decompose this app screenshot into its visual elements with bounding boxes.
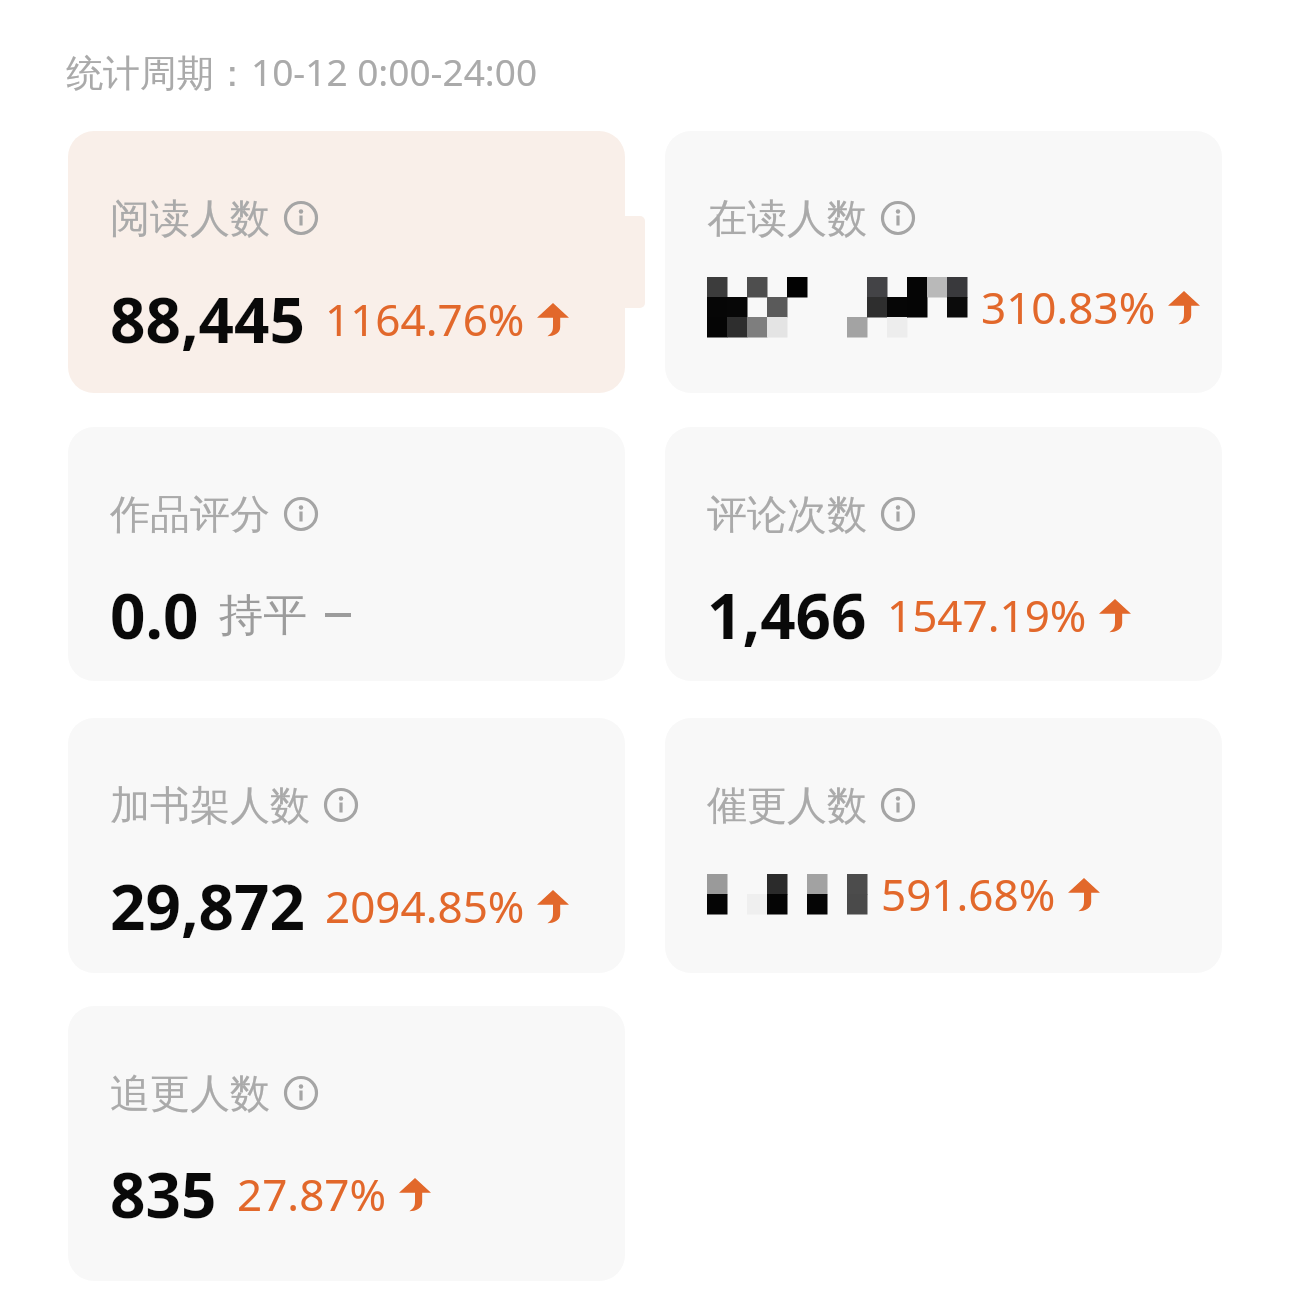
staticText: 评论次数 — [707, 489, 867, 539]
button[interactable]: 加书架人数 — [68, 718, 625, 973]
button[interactable]: 追更人数 — [68, 1006, 625, 1281]
staticText: 88,445 — [110, 277, 305, 361]
staticText: 作品评分 — [110, 489, 270, 539]
staticText: 阅读人数 — [110, 193, 270, 243]
staticText: 持平 — [219, 588, 307, 643]
button[interactable]: 作品评分 — [68, 427, 625, 681]
staticText: 27.87% — [237, 1164, 387, 1224]
staticText: 0.0 — [110, 573, 199, 657]
staticText: 310.83% — [981, 277, 1156, 337]
staticText: 1547.19% — [887, 585, 1087, 645]
staticText: 在读人数 — [707, 193, 867, 243]
staticText: 统计周期：10-12 0:00-24:00 — [66, 46, 538, 97]
staticText: 加书架人数 — [110, 780, 310, 830]
staticText: 29,872 — [110, 864, 305, 948]
staticText: 1,466 — [707, 573, 867, 657]
button[interactable]: 阅读人数 — [68, 131, 625, 393]
staticText: 835 — [110, 1152, 217, 1236]
button[interactable]: 在读人数 — [665, 131, 1222, 393]
staticText: 追更人数 — [110, 1068, 270, 1118]
staticText: 591.68% — [881, 864, 1056, 924]
staticText: 2094.85% — [325, 876, 525, 936]
staticText: 催更人数 — [707, 780, 867, 830]
button[interactable]: 评论次数 — [665, 427, 1222, 681]
staticText: 1164.76% — [325, 289, 525, 349]
button[interactable]: 催更人数 — [665, 718, 1222, 973]
